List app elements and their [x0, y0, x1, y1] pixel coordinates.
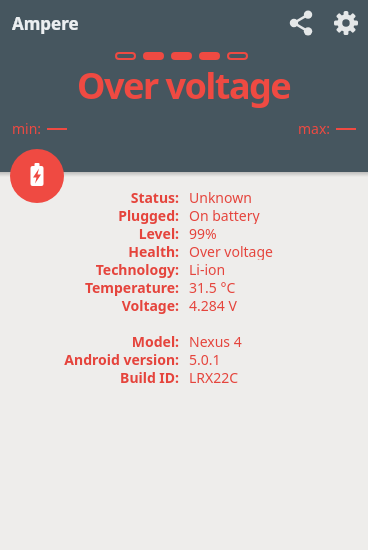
- staticText: 31.5 °C: [189, 278, 236, 296]
- staticText: Over voltage: [77, 61, 291, 110]
- staticText: Temperature:: [0, 278, 179, 296]
- staticText: Technology:: [0, 260, 179, 278]
- staticText: Unknown: [189, 188, 252, 206]
- button[interactable]: [10, 149, 64, 203]
- staticText: Android version:: [0, 350, 179, 368]
- staticText: min:: [12, 119, 42, 138]
- staticText: Build ID:: [0, 368, 179, 386]
- staticText: Health:: [0, 242, 179, 260]
- staticText: 4.284 V: [189, 296, 237, 314]
- staticText: On battery: [189, 206, 260, 224]
- staticText: Model:: [0, 332, 179, 350]
- staticText: 99%: [189, 224, 217, 242]
- button[interactable]: [328, 5, 364, 41]
- staticText: Level:: [0, 224, 179, 242]
- staticText: Ampere: [12, 12, 79, 35]
- staticText: Over voltage: [189, 242, 273, 260]
- staticText: Plugged:: [0, 206, 179, 224]
- staticText: max:: [298, 119, 331, 138]
- staticText: Status:: [0, 188, 179, 206]
- staticText: Li-ion: [189, 260, 226, 278]
- staticText: Voltage:: [0, 296, 179, 314]
- button[interactable]: [283, 5, 319, 41]
- staticText: LRX22C: [189, 368, 239, 386]
- staticText: 5.0.1: [189, 350, 221, 368]
- staticText: Nexus 4: [189, 332, 242, 350]
